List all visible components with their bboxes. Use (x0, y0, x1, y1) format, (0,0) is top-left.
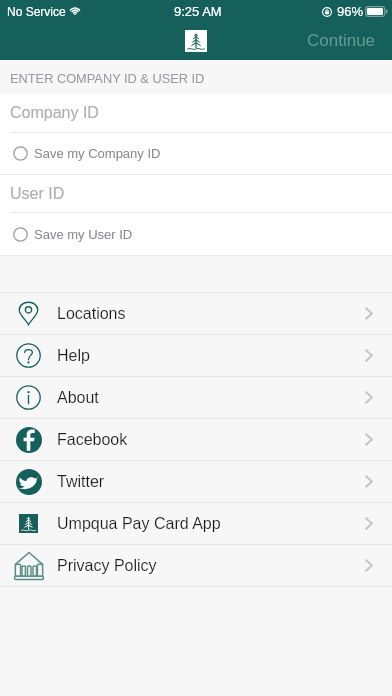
button[interactable]: Facebook (0, 419, 392, 460)
staticText: Company ID (10, 104, 99, 122)
button[interactable]: Continue (291, 26, 392, 57)
staticText: 96% (337, 4, 364, 19)
button[interactable]: Umpqua Pay Card App (0, 503, 392, 544)
staticText: Help (57, 347, 90, 365)
staticText: ENTER COMPANY ID & USER ID (10, 71, 205, 85)
button[interactable]: Help (0, 335, 392, 376)
staticText: Privacy Policy (57, 557, 157, 575)
staticText: User ID (10, 185, 65, 203)
staticText: No Service (7, 5, 66, 18)
button[interactable]: User ID (0, 175, 392, 212)
button[interactable]: Twitter (0, 461, 392, 502)
staticText: Save my Company ID (34, 146, 161, 161)
staticText: 9:25 AM (174, 4, 222, 19)
button[interactable]: Privacy Policy (0, 545, 392, 586)
staticText: Facebook (57, 431, 128, 449)
button[interactable]: Save my Company ID (0, 133, 392, 174)
button[interactable]: Locations (0, 293, 392, 334)
button[interactable]: Company ID (0, 94, 392, 132)
staticText: Save my User ID (34, 227, 133, 242)
button[interactable]: Save my User ID (0, 213, 392, 255)
staticText: Umpqua Pay Card App (57, 515, 221, 533)
button[interactable]: Umpqua Bank logo (185, 30, 207, 52)
staticText: About (57, 389, 99, 407)
button[interactable]: About (0, 377, 392, 418)
staticText: Locations (57, 305, 126, 323)
staticText: Twitter (57, 473, 105, 491)
staticText: Continue (307, 31, 376, 50)
